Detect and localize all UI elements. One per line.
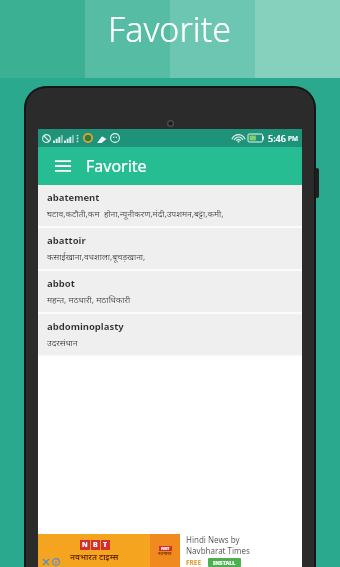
staticText: महन्त, मठधारी, मठाधिकारी: [47, 294, 131, 306]
button[interactable]: abatement: [38, 185, 302, 226]
staticText: नवभारत टाइम्स: [70, 551, 119, 562]
staticText: B: [93, 540, 98, 550]
staticText: घटाव,कटौती,कम होना,न्यूनीकरण,मंदी,उपशमन,…: [47, 208, 224, 220]
staticText: कसाईखाना,वधशाला,बूचड़खाना,: [47, 251, 146, 263]
button[interactable]: INSTALL: [213, 559, 236, 566]
staticText: नवभारत: [158, 551, 172, 556]
staticText: Favorite: [108, 6, 232, 52]
button[interactable]: abbot: [38, 271, 302, 312]
staticText: abdominoplasty: [47, 320, 124, 333]
staticText: FREE: [186, 558, 202, 567]
staticText: Hindi News by: [186, 534, 240, 545]
staticText: N: [82, 540, 88, 550]
button[interactable]: N: [38, 534, 302, 567]
staticText: abbot: [47, 277, 75, 290]
staticText: उदरसंधान: [47, 337, 78, 349]
button[interactable]: abdominoplasty: [38, 314, 302, 355]
staticText: 5:46: [268, 132, 286, 144]
button[interactable]: Open navigation drawer: [48, 151, 78, 181]
staticText: Favorite: [86, 155, 147, 177]
staticText: PM: [288, 134, 298, 143]
staticText: abatement: [47, 191, 100, 204]
staticText: Navbharat Times: [186, 545, 250, 556]
staticText: abattoir: [47, 234, 86, 247]
button[interactable]: abattoir: [38, 228, 302, 269]
staticText: T: [103, 540, 108, 550]
staticText: NBT: [161, 546, 170, 551]
staticText: INSTALL: [213, 559, 236, 566]
